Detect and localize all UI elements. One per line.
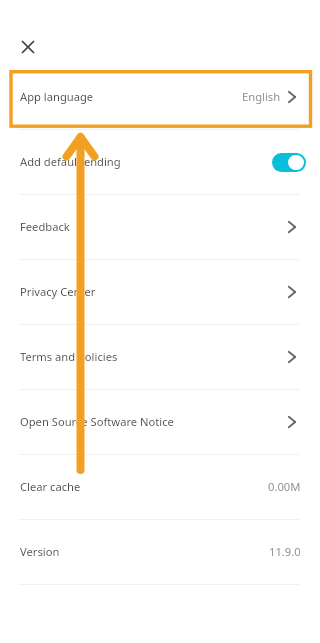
staticText: English xyxy=(242,89,281,104)
staticText: 0.00M xyxy=(268,479,301,494)
button[interactable]: Version xyxy=(0,520,320,584)
button[interactable]: Terms and Policies xyxy=(0,325,320,389)
staticText: Feedback xyxy=(20,219,70,234)
staticText: Privacy Center xyxy=(20,284,96,299)
staticText: Version xyxy=(20,544,60,559)
staticText: Terms and Policies xyxy=(20,349,118,364)
other: Open Terms and Policies xyxy=(288,351,296,363)
other: Open Feedback xyxy=(288,221,296,233)
staticText: App language xyxy=(20,89,94,104)
staticText: Clear cache xyxy=(20,479,81,494)
button[interactable]: Toggle xyxy=(272,153,306,172)
staticText: Add default ending xyxy=(20,154,121,169)
other: Open Open Source Software Notice xyxy=(288,416,296,428)
button[interactable]: App language xyxy=(0,65,320,129)
button[interactable]: Privacy Center xyxy=(0,260,320,324)
button[interactable]: Open Source Software Notice xyxy=(0,390,320,454)
button[interactable]: Add default ending xyxy=(0,130,320,194)
staticText: Open Source Software Notice xyxy=(20,414,174,429)
other: Open Privacy Center xyxy=(288,286,296,298)
staticText: 11.9.0 xyxy=(269,544,301,559)
button[interactable]: Feedback xyxy=(0,195,320,259)
button[interactable]: Close xyxy=(14,33,42,61)
button[interactable]: Clear cache xyxy=(0,455,320,519)
other: Open App language xyxy=(288,91,296,103)
